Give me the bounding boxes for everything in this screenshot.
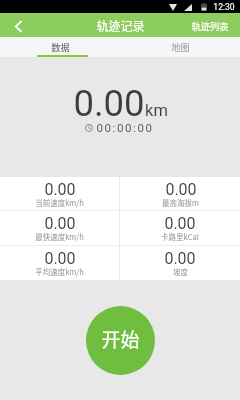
staticText: 0.00: [164, 214, 196, 233]
staticText: 数据: [51, 40, 70, 53]
staticText: 地图: [171, 40, 190, 53]
button[interactable]: 0.00: [120, 177, 240, 210]
button[interactable]: 开始: [86, 306, 155, 375]
staticText: 0.00: [73, 82, 145, 125]
staticText: 平均速度km/h: [35, 266, 84, 277]
staticText: 坡度: [173, 266, 188, 277]
staticText: 当前速度km/h: [35, 197, 84, 208]
staticText: 00:00:00: [96, 121, 154, 134]
button[interactable]: 0.00: [0, 211, 119, 245]
staticText: 轨迹记录: [96, 17, 145, 34]
staticText: 最高海拔m: [162, 197, 199, 208]
button[interactable]: 0.00: [0, 246, 119, 280]
button[interactable]: 0.00: [120, 246, 240, 280]
staticText: 0.00: [165, 180, 197, 199]
staticText: 轨迹列表: [191, 19, 229, 32]
staticText: 0.00: [44, 249, 76, 268]
button[interactable]: 轨迹列表: [183, 13, 240, 37]
staticText: 0.00: [164, 249, 196, 268]
button[interactable]: 数据: [0, 37, 120, 57]
button[interactable]: 0.00: [0, 177, 119, 210]
button[interactable]: Back: [0, 13, 33, 37]
button[interactable]: 地图: [120, 37, 240, 57]
staticText: 最快速度km/h: [35, 231, 84, 242]
staticText: 0.00: [44, 214, 76, 233]
staticText: 开始: [101, 325, 140, 353]
staticText: 12:30: [213, 2, 235, 12]
staticText: 卡路里kCal: [161, 231, 199, 242]
staticText: 0.00: [44, 180, 76, 199]
button[interactable]: 0.00: [120, 211, 240, 245]
staticText: km: [145, 101, 168, 120]
